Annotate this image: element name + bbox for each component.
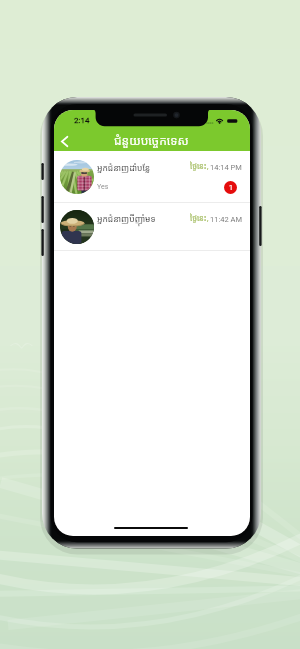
staticText: ជំនួយបច្ចេកទេស [114, 132, 189, 148]
staticText: 2:14 [74, 116, 90, 125]
staticText: អ្នកជំនាញបីញ៉ាំមទ [97, 213, 156, 225]
staticText: 14:14 PM [210, 163, 242, 172]
button[interactable]: អ្នកជំនាញដាំបន្លែ [54, 151, 250, 202]
button[interactable]: អ្នកជំនាញបីញ៉ាំមទ [54, 203, 250, 250]
staticText: 11:42 AM [210, 215, 242, 224]
staticText: អ្នកជំនាញដាំបន្លែ [97, 162, 151, 174]
staticText: Yes [97, 183, 109, 191]
button[interactable]: Back [54, 131, 74, 151]
staticText: ថ្ងៃនេះ, [190, 213, 209, 223]
staticText: 1 [229, 184, 233, 192]
staticText: ថ្ងៃនេះ, [190, 161, 209, 171]
